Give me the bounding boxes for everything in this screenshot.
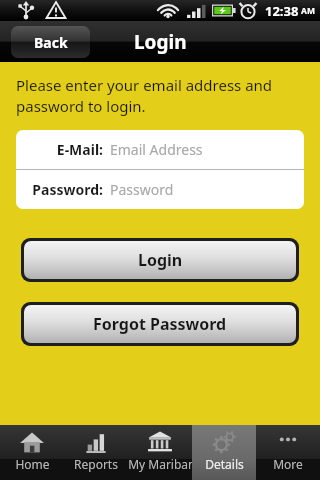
staticText: AM <box>301 5 315 17</box>
button[interactable]: Forgot Password <box>24 305 296 343</box>
button[interactable]: Login <box>24 241 296 279</box>
staticText: Reports <box>74 456 118 472</box>
button[interactable]: Back <box>11 26 90 58</box>
staticText: 12:38 <box>265 2 299 20</box>
button[interactable]: E-Mail: <box>16 130 304 169</box>
button[interactable]: Home <box>0 425 64 480</box>
staticText: Details <box>205 456 244 472</box>
staticText: Login <box>138 249 183 271</box>
button[interactable]: Reports <box>64 425 128 480</box>
staticText: E-Mail: <box>56 140 103 159</box>
staticText: Please enter your email address and pass… <box>16 75 296 117</box>
staticText: Forgot Password <box>93 313 227 335</box>
button[interactable]: Password: <box>16 170 304 209</box>
staticText: Back <box>34 33 68 52</box>
button[interactable]: My Maribank <box>128 425 192 480</box>
staticText: Password <box>110 180 174 199</box>
staticText: Email Address <box>110 140 203 159</box>
button[interactable]: More <box>256 425 320 480</box>
staticText: My Maribank <box>128 456 192 472</box>
button[interactable]: Details <box>192 425 256 480</box>
staticText: Home <box>15 456 50 472</box>
staticText: More <box>273 456 303 472</box>
staticText: Login <box>134 29 187 55</box>
staticText: Password: <box>32 180 103 199</box>
